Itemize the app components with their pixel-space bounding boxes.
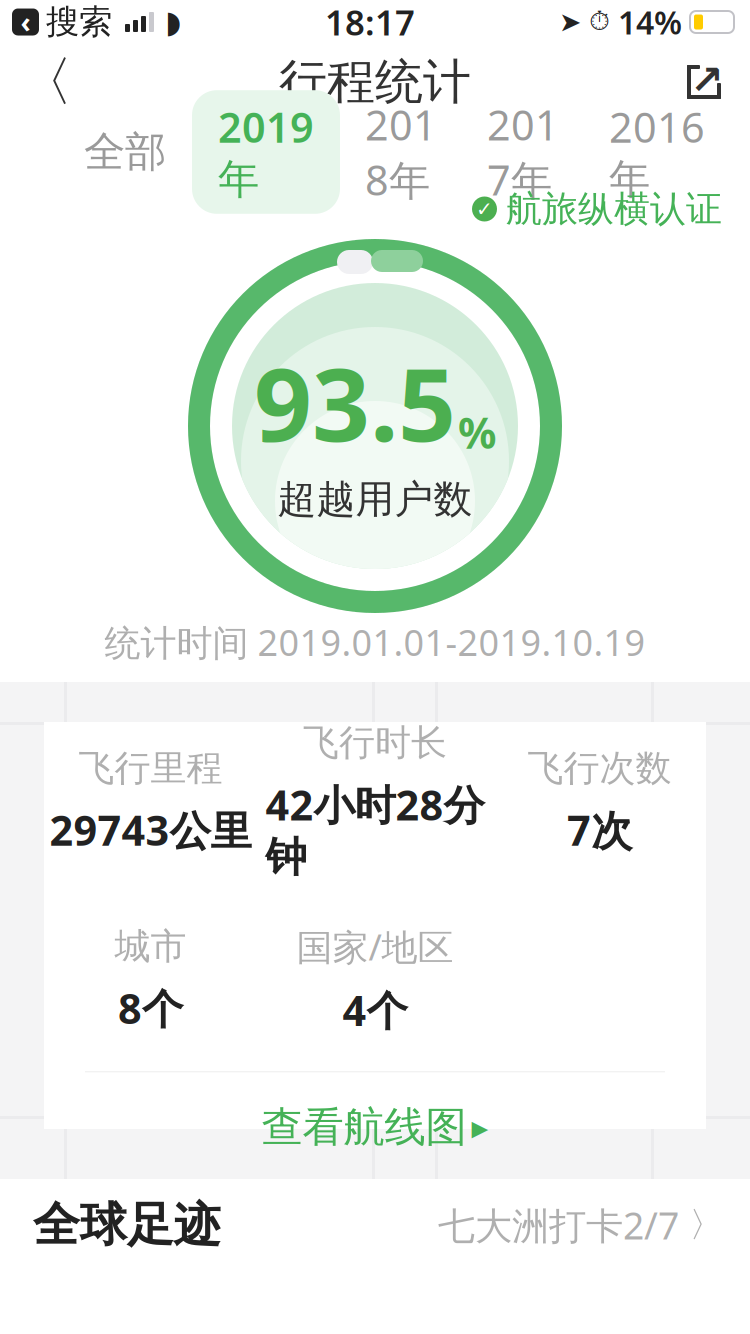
staticText: 查看航线图 [261,1102,466,1153]
staticText: 4个 [342,982,407,1037]
staticText: 全球足迹 [33,1196,221,1254]
staticText: ◗ [165,5,181,39]
staticText: 29743公里 [49,802,251,857]
staticText: % [458,404,496,461]
staticText: ▸ [471,1108,488,1146]
button[interactable]: 查看航线图 [44,1072,706,1182]
button[interactable]: 2019年 [192,90,340,214]
staticText: 搜索 [46,1,112,42]
staticText: 〉 [679,1204,724,1246]
staticText: 行程统计 [279,52,471,111]
staticText: 2019年 [218,99,314,205]
button[interactable]: 全球足迹 [0,1179,750,1271]
button[interactable]: 返回 [8,44,84,120]
staticText: 飞行里程 [78,746,222,790]
staticText: ‹ [20,3,30,41]
button[interactable]: 2016年 [584,90,730,214]
staticText: 超越用户数 [277,475,472,523]
staticText: 国家/地区 [296,923,453,970]
staticText: ➤ [559,7,581,37]
staticText: 城市 [114,924,186,969]
staticText: 飞行时长 [303,721,447,765]
staticText: 七大洲打卡2/7 [438,1200,679,1250]
staticText: ⏱ [589,9,610,35]
button[interactable]: 分享 [666,44,742,120]
staticText: 2017年 [487,97,559,207]
staticText: 〈 [19,49,72,115]
staticText: 8个 [118,981,183,1035]
staticText: 7次 [567,802,632,857]
staticText: 14% [618,1,682,43]
button[interactable]: 2017年 [462,88,584,216]
button[interactable]: 2018年 [340,88,462,216]
staticText: 统计时间 2019.01.01-2019.10.19 [104,618,645,666]
staticText: ✓ [476,198,493,220]
staticText: 飞行次数 [527,746,671,790]
staticText: 全部 [84,127,166,177]
staticText: 航旅纵横认证 [506,187,722,231]
button[interactable]: 全部 [58,118,192,186]
staticText: ↗ [690,57,724,103]
staticText: 2016年 [609,99,705,205]
staticText: 2018年 [365,97,437,207]
staticText: 42小时28分钟 [265,777,484,883]
staticText: 93.5 [254,335,456,470]
staticText: 18:17 [325,0,415,45]
